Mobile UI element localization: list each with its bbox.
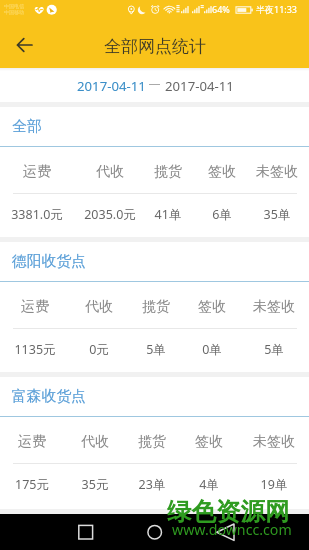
staticText: 未签收 <box>234 433 309 451</box>
staticText: 全部 <box>12 117 42 136</box>
staticText: 揽货 <box>128 163 208 181</box>
staticText: 中国移动 <box>4 9 24 15</box>
staticText: 运费 <box>0 298 75 316</box>
staticText: 35单 <box>237 206 309 223</box>
staticText: 0元 <box>59 341 139 358</box>
staticText: 1135元 <box>0 341 75 358</box>
staticText: 41单 <box>128 206 208 223</box>
button[interactable]: 全部 <box>0 107 309 237</box>
button[interactable]: 2017-04-11 <box>165 77 234 95</box>
staticText: 175元 <box>0 476 72 493</box>
staticText: 2035.0元 <box>70 206 150 223</box>
staticText: 运费 <box>0 433 72 451</box>
staticText: 运费 <box>0 163 77 181</box>
staticText: 0单 <box>172 341 252 358</box>
staticText: 3381.0元 <box>0 206 77 223</box>
staticText: 中国电信 <box>4 3 24 9</box>
staticText: 签收 <box>182 163 262 181</box>
staticText: 半夜11:33 <box>256 3 298 15</box>
button[interactable]: Back <box>10 32 40 62</box>
staticText: 5单 <box>234 341 309 358</box>
staticText: 5单 <box>116 341 196 358</box>
staticText: 揽货 <box>112 433 192 451</box>
staticText: 64% <box>212 3 230 15</box>
staticText: 签收 <box>169 433 249 451</box>
staticText: 全部网点统计 <box>104 36 206 57</box>
staticText: www.downcc.com <box>172 520 292 539</box>
staticText: 23单 <box>112 476 192 493</box>
staticText: 4单 <box>169 476 249 493</box>
button[interactable]: Recents <box>68 518 104 546</box>
staticText: 19单 <box>234 476 309 493</box>
staticText: 35元 <box>55 476 135 493</box>
staticText: 代收 <box>59 298 139 316</box>
staticText: 代收 <box>70 163 150 181</box>
staticText: 代收 <box>55 433 135 451</box>
staticText: 绿色资源网 <box>167 496 290 527</box>
button[interactable]: 德阳收货点 <box>0 242 309 372</box>
button[interactable]: 2017-04-11 <box>77 77 146 95</box>
staticText: 未签收 <box>237 163 309 181</box>
staticText: 签收 <box>172 298 252 316</box>
button[interactable]: Back <box>208 518 244 546</box>
staticText: 揽货 <box>116 298 196 316</box>
staticText: 6单 <box>182 206 262 223</box>
staticText: 富森收货点 <box>12 387 86 406</box>
button[interactable]: Home <box>136 518 172 546</box>
button[interactable]: 富森收货点 <box>0 377 309 507</box>
staticText: 未签收 <box>234 298 309 316</box>
staticText: 德阳收货点 <box>12 252 86 271</box>
